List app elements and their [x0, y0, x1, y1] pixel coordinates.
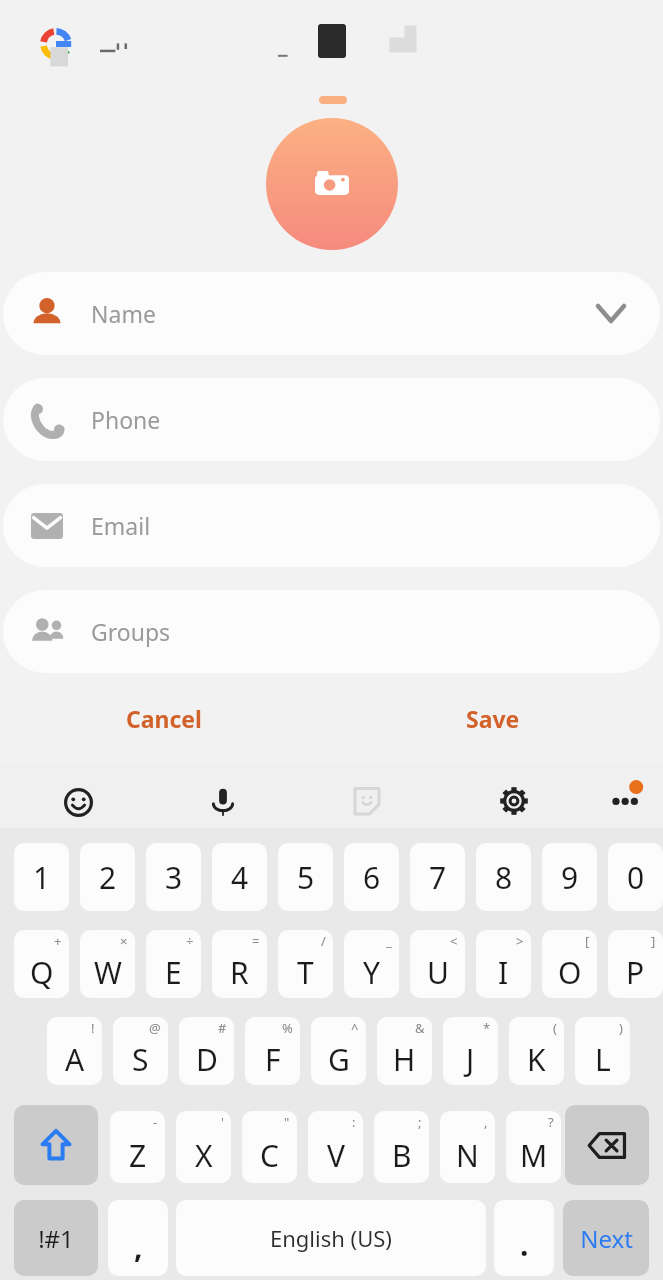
button[interactable]: >	[476, 930, 531, 998]
button[interactable]: @	[113, 1017, 168, 1085]
staticText: 0	[627, 857, 645, 898]
button[interactable]: 2	[80, 843, 135, 911]
button[interactable]: Settings	[495, 782, 533, 820]
button[interactable]: !	[47, 1017, 102, 1085]
button[interactable]: 4	[212, 843, 267, 911]
button[interactable]: ^	[311, 1017, 366, 1085]
button[interactable]: Shift	[14, 1105, 98, 1185]
staticText: 3	[165, 857, 183, 898]
button[interactable]: )	[575, 1017, 630, 1085]
button[interactable]: ,	[440, 1111, 495, 1183]
staticText: M	[520, 1135, 548, 1176]
staticText: )	[619, 1019, 623, 1037]
button[interactable]: [	[542, 930, 597, 998]
button[interactable]: Save	[466, 703, 520, 734]
button[interactable]: *	[443, 1017, 498, 1085]
button[interactable]: Backspace	[565, 1105, 649, 1185]
staticText: Y	[363, 952, 380, 993]
staticText: _	[386, 932, 392, 950]
button[interactable]: 5	[278, 843, 333, 911]
button[interactable]: English (US)	[176, 1200, 486, 1276]
staticText: Name	[91, 298, 156, 329]
staticText: B	[392, 1135, 412, 1176]
button[interactable]: Groups	[3, 590, 660, 673]
button[interactable]: Cancel	[126, 703, 202, 734]
staticText: Save	[466, 703, 520, 734]
button[interactable]: -	[110, 1111, 165, 1183]
button[interactable]: (	[509, 1017, 564, 1085]
staticText: L	[595, 1039, 611, 1080]
button[interactable]: ×	[80, 930, 135, 998]
staticText: '	[221, 1113, 224, 1131]
staticText: X	[195, 1135, 213, 1176]
button[interactable]: 8	[476, 843, 531, 911]
button[interactable]: Next	[563, 1200, 649, 1276]
staticText: K	[527, 1039, 546, 1080]
button[interactable]: ;	[374, 1111, 429, 1183]
button[interactable]: Add photo	[266, 118, 398, 250]
staticText: 8	[495, 857, 513, 898]
staticText: -	[153, 1113, 158, 1131]
staticText: N	[456, 1135, 479, 1176]
button[interactable]: "	[242, 1111, 297, 1183]
button[interactable]: 7	[410, 843, 465, 911]
staticText: :	[352, 1113, 356, 1131]
button[interactable]: #	[179, 1017, 234, 1085]
button[interactable]: ?	[506, 1111, 561, 1183]
button[interactable]: <	[410, 930, 465, 998]
button[interactable]: :	[308, 1111, 363, 1183]
staticText: ×	[120, 932, 128, 950]
staticText: =	[252, 932, 260, 950]
staticText: J	[466, 1039, 475, 1080]
button[interactable]: ÷	[146, 930, 201, 998]
button[interactable]: &	[377, 1017, 432, 1085]
staticText: +	[54, 932, 62, 950]
button[interactable]: Period	[494, 1200, 554, 1276]
button[interactable]: 6	[344, 843, 399, 911]
button[interactable]: !#1	[14, 1200, 98, 1276]
staticText: H	[393, 1039, 416, 1080]
staticText: A	[65, 1039, 85, 1080]
staticText: G	[328, 1039, 350, 1080]
staticText: >	[516, 932, 524, 950]
staticText: #	[218, 1019, 227, 1037]
staticText: 7	[429, 857, 447, 898]
staticText: .	[520, 1224, 529, 1265]
button[interactable]: Emoji	[59, 783, 97, 821]
button[interactable]: %	[245, 1017, 300, 1085]
staticText: %	[282, 1019, 293, 1037]
staticText: E	[165, 952, 182, 993]
button[interactable]: 1	[14, 843, 69, 911]
button[interactable]: +	[14, 930, 69, 998]
staticText: ;	[418, 1113, 422, 1131]
button[interactable]: Stickers	[348, 782, 386, 820]
button[interactable]: Voice input	[204, 783, 242, 821]
button[interactable]: _	[344, 930, 399, 998]
staticText: O	[558, 952, 582, 993]
staticText: /	[321, 932, 326, 950]
button[interactable]: Phone	[3, 378, 660, 461]
button[interactable]: More options	[604, 777, 650, 823]
staticText: V	[327, 1135, 345, 1176]
staticText: I	[498, 952, 509, 993]
button[interactable]: '	[176, 1111, 231, 1183]
button[interactable]: =	[212, 930, 267, 998]
staticText: W	[94, 952, 122, 993]
button[interactable]: Comma	[108, 1200, 168, 1276]
staticText: ÷	[186, 932, 194, 950]
staticText: <	[450, 932, 458, 950]
staticText: D	[196, 1039, 218, 1080]
button[interactable]: 9	[542, 843, 597, 911]
staticText: ,	[134, 1226, 143, 1267]
button[interactable]: /	[278, 930, 333, 998]
staticText: 4	[231, 857, 249, 898]
button[interactable]: 0	[608, 843, 663, 911]
button[interactable]: 3	[146, 843, 201, 911]
button[interactable]: Email	[3, 484, 660, 567]
button[interactable]: Name	[3, 272, 660, 355]
staticText: Q	[30, 952, 54, 993]
staticText: 1	[33, 857, 51, 898]
staticText: *	[483, 1019, 491, 1037]
button[interactable]: ]	[608, 930, 663, 998]
staticText: ?	[548, 1113, 554, 1131]
